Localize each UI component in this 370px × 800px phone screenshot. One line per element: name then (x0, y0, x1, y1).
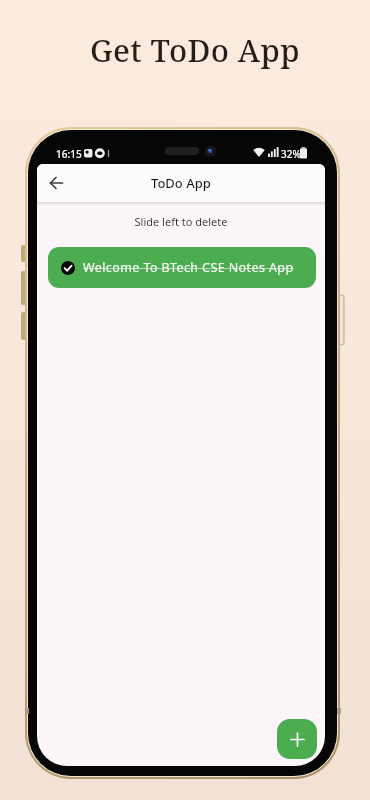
button[interactable] (277, 719, 317, 759)
button[interactable]: ToDo App (37, 164, 325, 202)
staticText: Get ToDo App (10, 29, 370, 71)
button[interactable] (50, 177, 63, 189)
staticText: ToDo App (151, 174, 211, 192)
staticText: Slide left to delete (37, 214, 325, 229)
staticText: 16:15 (56, 147, 82, 161)
button[interactable]: Welcome To BTech CSE Notes App (48, 247, 316, 288)
staticText: 32% (281, 147, 301, 161)
staticText: Welcome To BTech CSE Notes App (83, 259, 294, 276)
